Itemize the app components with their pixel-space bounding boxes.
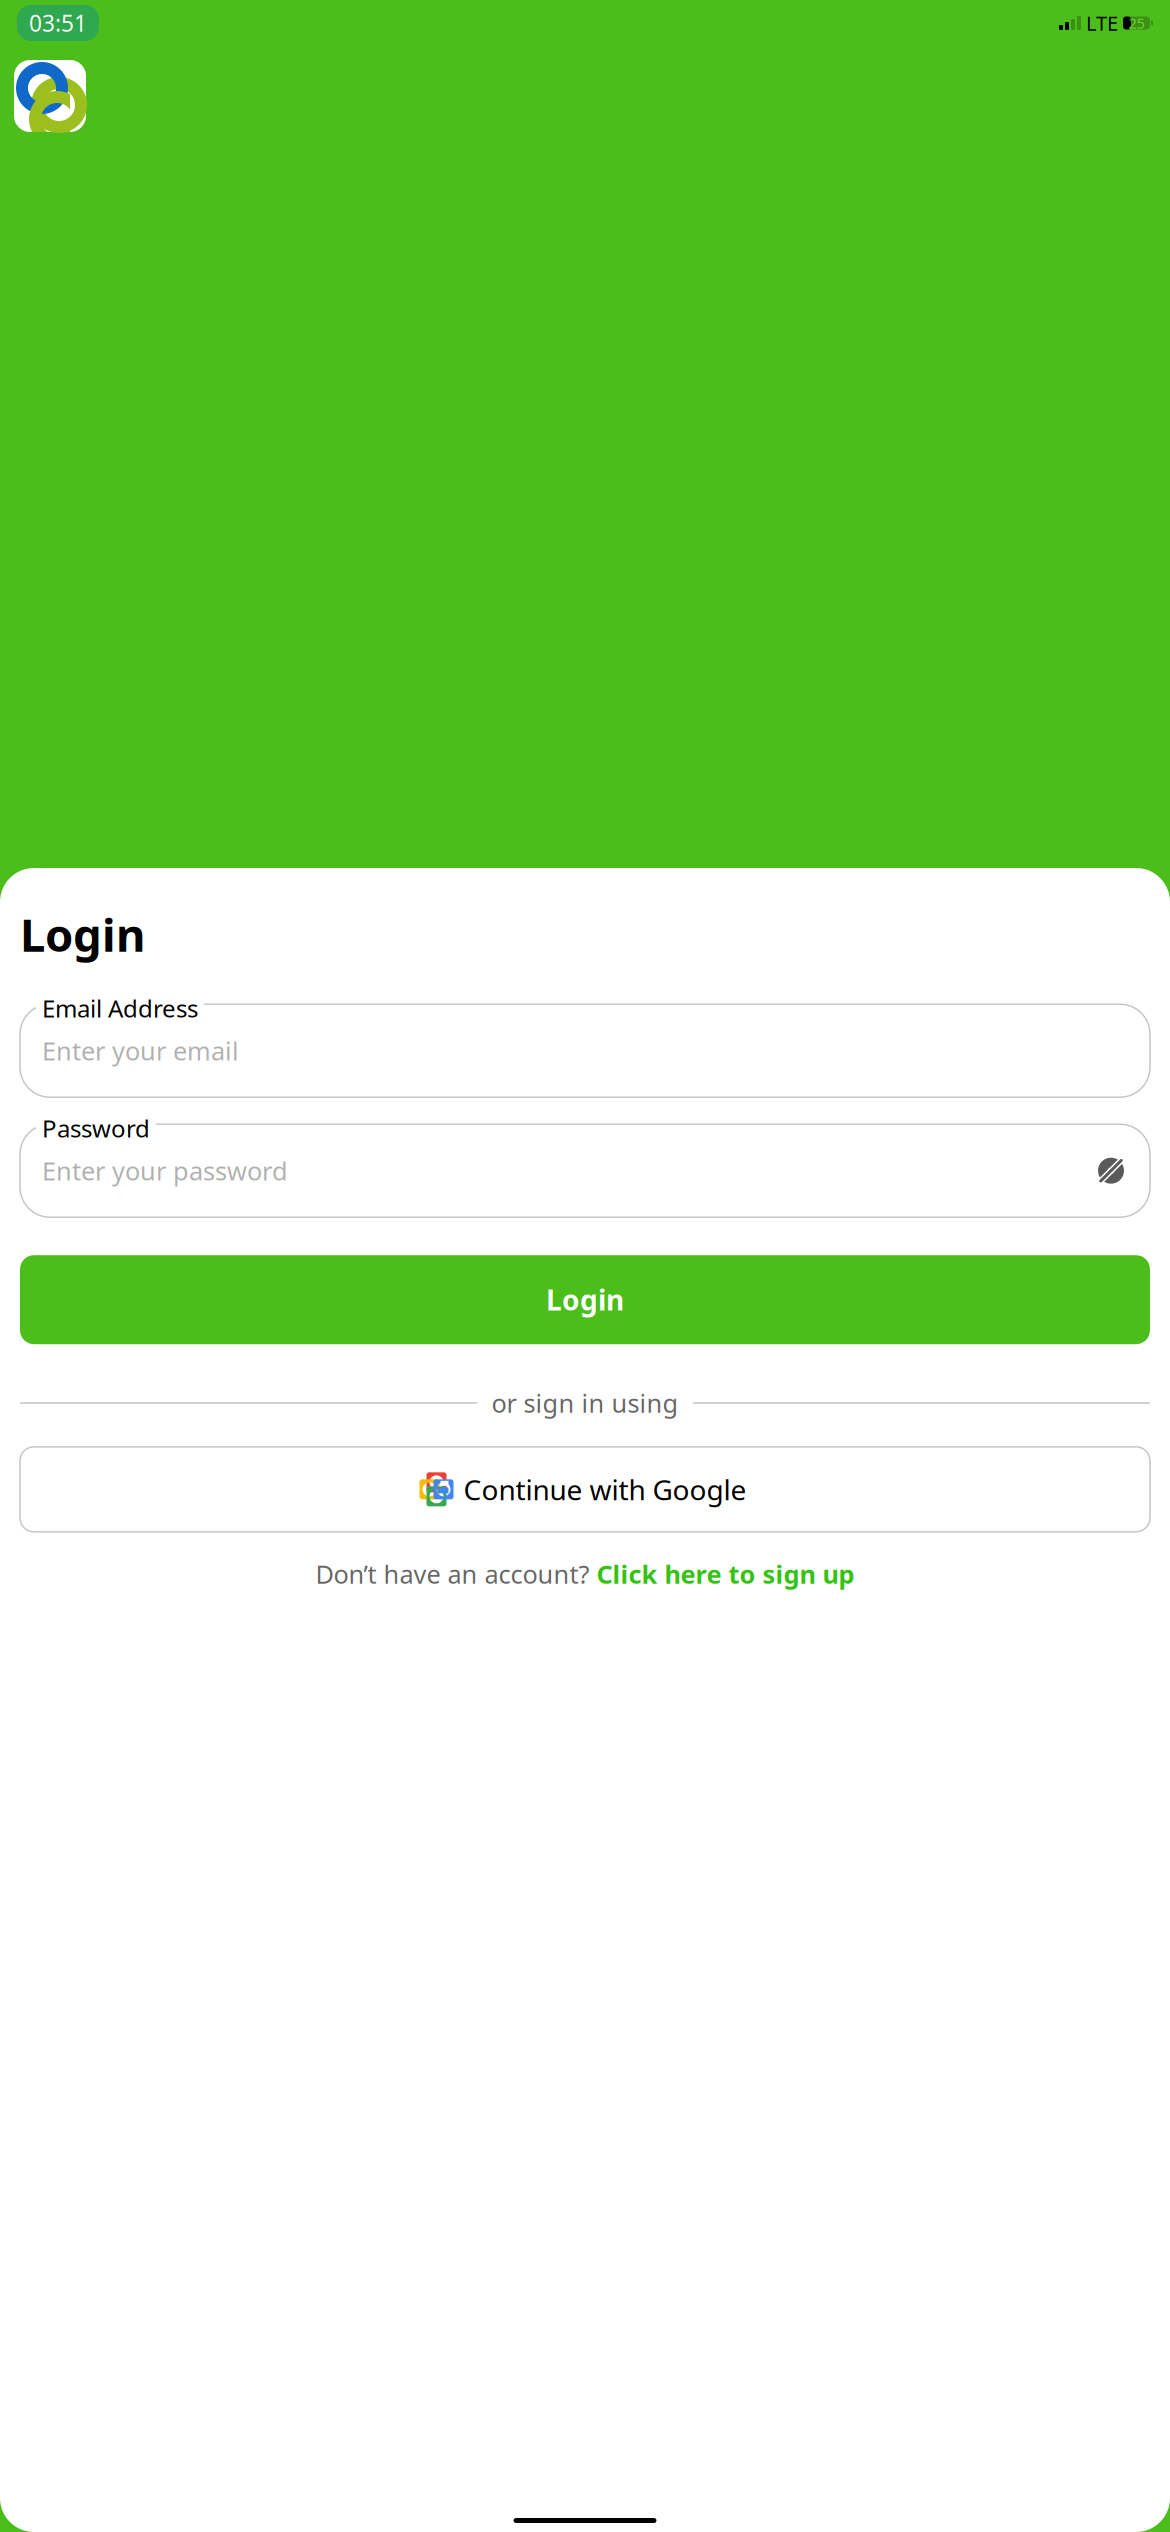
- staticText: LTE: [1086, 10, 1118, 36]
- staticText: Password: [42, 1112, 150, 1144]
- staticText: Click here to sign up: [596, 1557, 854, 1591]
- staticText: 25: [1128, 13, 1144, 33]
- staticText: Enter your email: [42, 1034, 239, 1067]
- button[interactable]: Show password: [1094, 1154, 1128, 1188]
- staticText: 03:51: [29, 8, 87, 38]
- staticText: Login: [546, 1281, 624, 1318]
- staticText: Login: [20, 904, 145, 964]
- staticText: Don’t have an account?: [315, 1557, 596, 1591]
- button[interactable]: Don’t have an account?: [20, 1550, 1150, 1598]
- button[interactable]: Continue with Google: [20, 1447, 1150, 1532]
- staticText: Continue with Google: [463, 1471, 746, 1508]
- staticText: Email Address: [42, 992, 198, 1024]
- button[interactable]: Login: [20, 1255, 1150, 1344]
- staticText: or sign in using: [491, 1386, 678, 1420]
- staticText: Enter your password: [42, 1154, 288, 1187]
